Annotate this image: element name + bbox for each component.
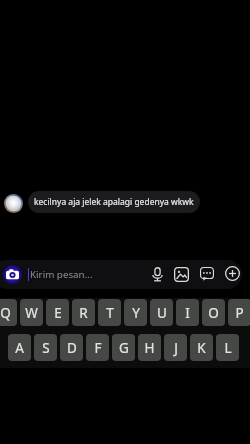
button[interactable]: More options <box>225 266 240 281</box>
button[interactable]: J <box>164 334 187 361</box>
button[interactable]: T <box>98 299 121 326</box>
button[interactable]: K <box>190 334 213 361</box>
staticText: Kirim pesan... <box>30 268 93 281</box>
staticText: Q <box>0 304 11 322</box>
button[interactable]: F <box>86 334 109 361</box>
staticText: E <box>54 304 62 322</box>
button[interactable]: Q <box>0 299 17 326</box>
button[interactable]: D <box>60 334 83 361</box>
button[interactable]: Sticker <box>200 267 214 281</box>
button[interactable]: W <box>20 299 43 326</box>
staticText: S <box>42 339 50 357</box>
staticText: D <box>67 339 77 357</box>
button[interactable]: R <box>72 299 95 326</box>
staticText: R <box>79 304 88 322</box>
button[interactable]: A <box>8 334 31 361</box>
staticText: H <box>144 339 155 357</box>
button[interactable]: G <box>112 334 135 361</box>
staticText: J <box>174 339 178 357</box>
button[interactable]: U <box>150 299 173 326</box>
staticText: O <box>208 304 219 322</box>
staticText: G <box>119 339 129 357</box>
staticText: Y <box>132 304 140 322</box>
button[interactable]: S <box>34 334 57 361</box>
button[interactable]: P <box>228 299 250 326</box>
button[interactable]: O <box>202 299 225 326</box>
staticText: I <box>185 304 190 322</box>
button[interactable]: Gallery <box>174 267 189 282</box>
button[interactable]: E <box>46 299 69 326</box>
staticText: P <box>235 304 244 322</box>
button[interactable]: Voice message <box>151 267 164 282</box>
staticText: K <box>197 339 206 357</box>
staticText: F <box>94 339 102 357</box>
button[interactable]: I <box>176 299 199 326</box>
button[interactable]: kecilnya aja jelek apalagi gedenya wkwk <box>28 191 200 213</box>
button[interactable]: L <box>216 334 239 361</box>
button[interactable]: H <box>138 334 161 361</box>
button[interactable]: Profile picture <box>4 194 23 213</box>
staticText: A <box>15 339 24 357</box>
button[interactable]: Y <box>124 299 147 326</box>
staticText: U <box>157 304 167 322</box>
staticText: L <box>224 339 232 357</box>
staticText: T <box>106 304 114 322</box>
button[interactable]: Camera <box>3 265 22 284</box>
staticText: W <box>25 304 38 322</box>
staticText: kecilnya aja jelek apalagi gedenya wkwk <box>34 196 194 208</box>
